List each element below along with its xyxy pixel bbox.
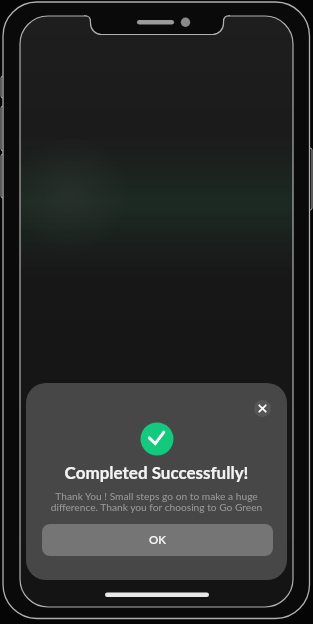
button[interactable] [254, 400, 271, 417]
staticText: Completed Successfully! [26, 462, 287, 482]
button[interactable]: OK [42, 524, 273, 556]
staticText: OK [149, 533, 166, 547]
staticText: Thank You ! Small steps go on to make a … [34, 490, 279, 514]
